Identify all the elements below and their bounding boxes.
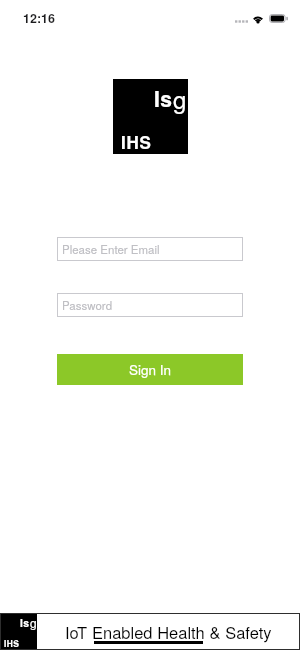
staticText: g <box>173 81 187 115</box>
staticText: Is <box>154 83 173 113</box>
staticText: IoT <box>65 620 92 644</box>
staticText: Password <box>62 297 113 313</box>
button[interactable]: Sign In <box>57 354 243 385</box>
button[interactable]: Password <box>57 293 243 317</box>
button[interactable]: Please Enter Email <box>57 237 243 261</box>
staticText: 12:16 <box>23 9 55 27</box>
staticText: Sign In <box>129 360 172 379</box>
staticText: Enabled Health <box>92 620 205 644</box>
staticText: IHS <box>4 638 20 650</box>
staticText: IHS <box>121 130 152 154</box>
button[interactable]: Is <box>0 613 300 650</box>
staticText: Is <box>20 615 30 630</box>
staticText: g <box>30 614 37 631</box>
staticText: & Safety <box>205 620 272 644</box>
staticText: Please Enter Email <box>62 241 160 257</box>
